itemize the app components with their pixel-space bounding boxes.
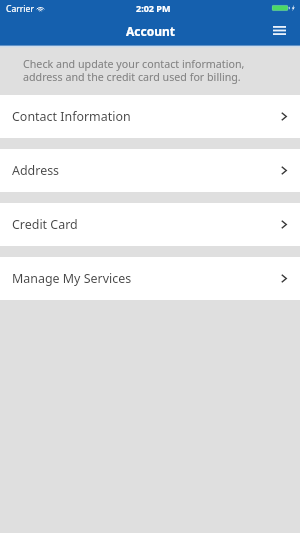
staticText: Manage My Services [12,270,132,287]
button[interactable]: Menu [268,19,290,45]
button[interactable]: Contact Information [0,95,300,138]
button[interactable]: Manage My Services [0,257,300,300]
staticText: Address [12,162,60,179]
staticText: Check and update your contact informatio… [23,57,280,84]
staticText: Account [126,23,175,39]
staticText: Contact Information [12,108,131,125]
button[interactable]: Address [0,149,300,192]
staticText: Credit Card [12,216,78,233]
staticText: Carrier [6,3,34,15]
button[interactable]: Credit Card [0,203,300,246]
staticText: 2:02 PM [136,2,171,14]
